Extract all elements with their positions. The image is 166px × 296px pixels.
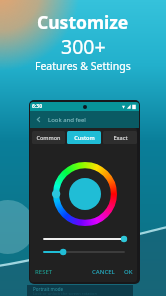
staticText: 300+	[61, 33, 106, 60]
staticText: Portrait mode	[33, 286, 64, 292]
staticText: 6:30	[32, 103, 42, 110]
staticText: Look and feel	[48, 116, 86, 124]
button[interactable]: Custom	[67, 131, 101, 144]
staticText: RESET	[35, 268, 53, 276]
staticText: OK	[124, 268, 133, 276]
button[interactable]: CANCEL	[89, 265, 118, 279]
staticText: Lock or unlock the screen rotation	[33, 291, 97, 296]
staticText: CANCEL	[92, 268, 115, 276]
staticText: Exact	[113, 134, 128, 141]
staticText: Customize	[37, 10, 129, 34]
staticText: Common	[36, 134, 61, 141]
button[interactable]: Common	[32, 131, 65, 144]
button[interactable]: RESET	[32, 265, 56, 279]
button[interactable]: Back	[33, 114, 44, 125]
staticText: Features & Settings	[35, 59, 131, 73]
button[interactable]: Exact	[103, 131, 137, 144]
staticText: Custom	[74, 134, 95, 141]
button[interactable]: OK	[121, 265, 136, 279]
